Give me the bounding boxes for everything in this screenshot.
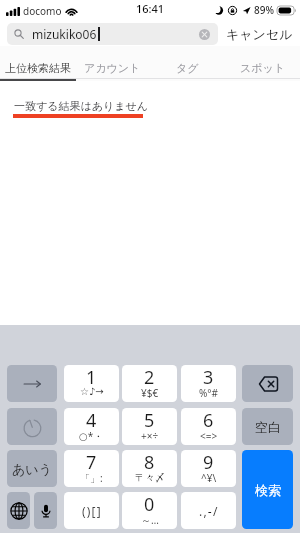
staticText: 7: [86, 450, 97, 475]
staticText: ^¥\: [201, 471, 217, 485]
button[interactable]: 上位検索結果: [0, 46, 75, 78]
staticText: ()[]: [82, 503, 102, 519]
staticText: ☆♪→: [80, 386, 104, 398]
button[interactable]: .,-/: [181, 492, 236, 529]
staticText: 9: [203, 450, 214, 475]
button[interactable]: 7: [64, 450, 119, 487]
staticText: 1: [86, 365, 97, 390]
button[interactable]: 3: [181, 365, 236, 402]
button[interactable]: 1: [64, 365, 119, 402]
staticText: 8: [144, 450, 155, 475]
staticText: 一致する結果はありません: [14, 99, 149, 113]
staticText: docomo: [23, 4, 62, 18]
staticText: 上位検索結果: [5, 61, 71, 75]
staticText: スポット: [240, 61, 286, 75]
button[interactable]: Dictation: [34, 492, 57, 529]
staticText: <=>: [200, 429, 218, 443]
staticText: ¥$€: [141, 386, 159, 400]
staticText: 3: [203, 365, 214, 390]
staticText: キャンセル: [226, 26, 293, 42]
button[interactable]: 2: [122, 365, 177, 402]
button[interactable]: Undo: [7, 408, 57, 445]
button[interactable]: スポット: [225, 46, 300, 78]
button[interactable]: mizukiko06: [7, 23, 218, 45]
button[interactable]: 8: [122, 450, 177, 487]
button[interactable]: 4: [64, 408, 119, 445]
button[interactable]: あいう: [7, 450, 57, 487]
button[interactable]: 9: [181, 450, 236, 487]
staticText: ～…: [141, 513, 159, 527]
button[interactable]: 空白: [242, 408, 293, 445]
staticText: mizukiko06: [32, 26, 97, 42]
staticText: 5: [144, 408, 155, 433]
button[interactable]: タグ: [150, 46, 225, 78]
button[interactable]: 5: [122, 408, 177, 445]
staticText: 〒々〆: [135, 471, 165, 484]
staticText: 16:41: [136, 1, 165, 16]
button[interactable]: ()[]: [64, 492, 119, 529]
staticText: アカウント: [84, 61, 141, 75]
button[interactable]: Change keyboard: [7, 492, 30, 529]
staticText: 空白: [255, 419, 281, 435]
staticText: 「」:: [80, 471, 103, 485]
button[interactable]: 検索: [242, 450, 293, 529]
staticText: %°#: [199, 386, 219, 400]
staticText: あいう: [12, 461, 52, 477]
staticText: 4: [86, 408, 97, 433]
button[interactable]: 6: [181, 408, 236, 445]
staticText: 2: [144, 365, 155, 390]
staticText: 6: [203, 408, 214, 433]
staticText: タグ: [176, 61, 199, 75]
staticText: 検索: [255, 482, 281, 498]
button[interactable]: アカウント: [75, 46, 150, 78]
staticText: 0: [144, 492, 155, 517]
button[interactable]: 0: [122, 492, 177, 529]
staticText: +×÷: [141, 429, 159, 443]
other: Clear text: [199, 29, 210, 40]
staticText: 89%: [254, 3, 274, 17]
staticText: ○*・: [79, 429, 104, 443]
button[interactable]: Delete: [242, 365, 293, 402]
button[interactable]: Next candidate: [7, 365, 57, 402]
staticText: .,-/: [199, 503, 219, 519]
button[interactable]: キャンセル: [226, 23, 293, 45]
